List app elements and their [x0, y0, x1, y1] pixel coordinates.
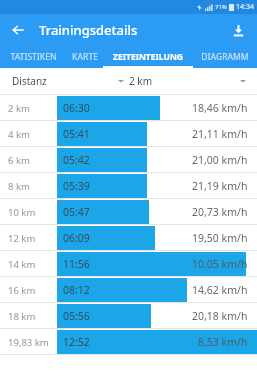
staticText: 11:56	[63, 257, 90, 271]
staticText: 05:41	[63, 127, 90, 141]
staticText: 05:56	[63, 309, 90, 323]
staticText: 6 km	[8, 154, 30, 167]
staticText: 06:09	[63, 231, 90, 245]
staticText: 05:39	[63, 179, 90, 193]
staticText: TATISTIKEN	[10, 51, 57, 63]
staticText: 10,05 km/h	[192, 257, 248, 271]
button[interactable]: DIAGRAMM	[193, 46, 257, 68]
staticText: 20,73 km/h	[192, 205, 248, 219]
staticText: 18,46 km/h	[192, 101, 248, 115]
button[interactable]: TATISTIKEN	[0, 46, 66, 68]
button[interactable]: 19,83 km	[0, 329, 257, 355]
button[interactable]: Download	[225, 17, 251, 43]
staticText: 14,62 km/h	[192, 283, 248, 297]
button[interactable]: 6 km	[0, 147, 257, 173]
staticText: Trainingsdetails	[39, 21, 138, 39]
button[interactable]: 18 km	[0, 303, 257, 329]
button[interactable]: 8 km	[0, 173, 257, 199]
staticText: 8 km	[8, 180, 30, 193]
button[interactable]: ZEITEINTEILUNG	[103, 46, 193, 68]
button[interactable]: 14 km	[0, 251, 257, 277]
staticText: 06:30	[63, 101, 90, 115]
button[interactable]: 2 km	[0, 95, 257, 121]
staticText: KARTE	[72, 51, 98, 63]
staticText: 08:12	[63, 283, 90, 297]
staticText: 4 km	[8, 128, 30, 141]
button[interactable]: 4 km	[0, 121, 257, 147]
staticText: 2 km	[129, 74, 153, 88]
staticText: 21,00 km/h	[192, 153, 248, 167]
button[interactable]: 2 km	[129, 68, 247, 94]
button[interactable]: KARTE	[66, 46, 103, 68]
staticText: 71%	[215, 3, 227, 11]
staticText: 8,53 km/h	[198, 335, 248, 349]
staticText: 12 km	[8, 232, 36, 245]
button[interactable]: 16 km	[0, 277, 257, 303]
staticText: 05:42	[63, 153, 90, 167]
staticText: ZEITEINTEILUNG	[113, 51, 183, 63]
staticText: 16 km	[8, 284, 36, 297]
staticText: 19,83 km	[8, 336, 49, 349]
button[interactable]: Back	[5, 17, 31, 43]
staticText: 2 km	[8, 102, 30, 115]
button[interactable]: Distanz	[12, 68, 125, 94]
staticText: 05:47	[63, 205, 90, 219]
staticText: 18 km	[8, 310, 36, 323]
staticText: 12:52	[63, 335, 90, 349]
staticText: 19,50 km/h	[192, 231, 248, 245]
staticText: DIAGRAMM	[201, 51, 249, 63]
button[interactable]: 12 km	[0, 225, 257, 251]
staticText: 21,19 km/h	[192, 179, 248, 193]
staticText: 14:34	[236, 2, 254, 12]
staticText: 10 km	[8, 206, 36, 219]
staticText: 20,18 km/h	[192, 309, 248, 323]
staticText: 21,11 km/h	[192, 127, 248, 141]
staticText: 14 km	[8, 258, 36, 271]
button[interactable]: 10 km	[0, 199, 257, 225]
staticText: Distanz	[12, 74, 47, 88]
